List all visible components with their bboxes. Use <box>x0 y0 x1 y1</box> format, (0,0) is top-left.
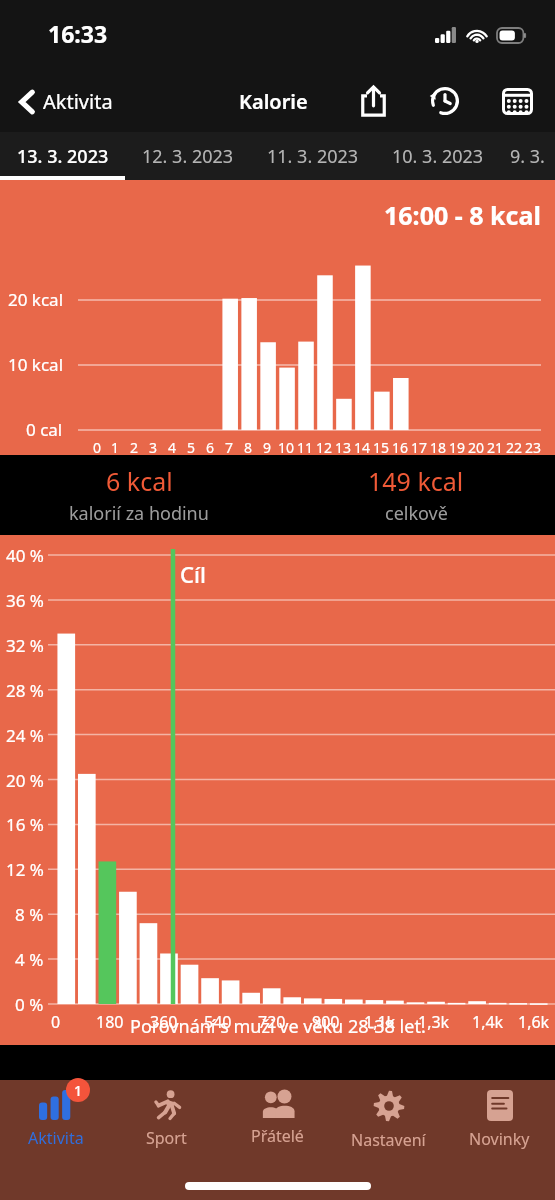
staticText: 0 <box>51 1011 61 1033</box>
staticText: 16 % <box>6 813 44 836</box>
staticText: Nastavení <box>351 1129 426 1151</box>
staticText: 6 kcal <box>106 464 173 498</box>
staticText: 720 <box>258 1011 286 1033</box>
staticText: 40 % <box>6 544 44 567</box>
staticText: celkově <box>385 501 448 526</box>
staticText: 0 <box>93 438 102 457</box>
staticText: 12. 3. 2023 <box>142 144 234 169</box>
staticText: 20 % <box>6 769 44 792</box>
staticText: 1,1k <box>364 1011 396 1033</box>
staticText: Aktivita <box>28 1127 84 1149</box>
staticText: 9. 3. <box>510 144 545 169</box>
staticText: 28 % <box>6 679 44 702</box>
button[interactable]: Share <box>351 79 395 123</box>
staticText: 12 <box>316 438 333 457</box>
staticText: 4 % <box>15 948 44 971</box>
staticText: 10 <box>278 438 295 457</box>
staticText: Sport <box>146 1127 187 1149</box>
staticText: 16 <box>392 438 409 457</box>
staticText: 3 <box>149 438 158 457</box>
staticText: 24 % <box>6 724 44 747</box>
button[interactable]: Nastavení <box>333 1080 444 1168</box>
staticText: 1 <box>74 1081 83 1100</box>
staticText: 1 <box>111 438 120 457</box>
staticText: 7 <box>225 438 234 457</box>
staticText: 18 <box>430 438 447 457</box>
button[interactable]: 1 <box>0 1080 111 1168</box>
staticText: 2 <box>130 438 139 457</box>
staticText: 17 <box>411 438 428 457</box>
staticText: 12 % <box>6 858 44 881</box>
button[interactable]: 10. 3. 2023 <box>375 132 500 180</box>
staticText: 13 <box>335 438 352 457</box>
staticText: 180 <box>96 1011 124 1033</box>
staticText: 10. 3. 2023 <box>392 144 484 169</box>
staticText: Kalorie <box>239 88 308 115</box>
staticText: 10 kcal <box>8 353 64 376</box>
staticText: 21 <box>487 438 504 457</box>
button[interactable]: 11. 3. 2023 <box>250 132 375 180</box>
button[interactable]: Sport <box>111 1080 222 1168</box>
staticText: 20 <box>468 438 485 457</box>
staticText: 19 <box>449 438 466 457</box>
button[interactable]: History <box>423 79 467 123</box>
staticText: 32 % <box>6 634 44 657</box>
staticText: Aktivita <box>43 88 113 115</box>
button[interactable]: 9. 3. <box>500 132 555 180</box>
staticText: 13. 3. 2023 <box>17 144 109 169</box>
staticText: 1,4k <box>472 1011 504 1033</box>
staticText: Přátelé <box>251 1125 304 1147</box>
staticText: 900 <box>312 1011 340 1033</box>
button[interactable]: Aktivita <box>14 82 119 121</box>
button[interactable]: Novinky <box>444 1080 555 1168</box>
staticText: 15 <box>373 438 390 457</box>
staticText: 360 <box>150 1011 178 1033</box>
staticText: 4 <box>168 438 177 457</box>
staticText: 36 % <box>6 589 44 612</box>
button[interactable]: Calendar <box>495 79 539 123</box>
staticText: 1,6k <box>518 1011 550 1033</box>
staticText: 1,3k <box>418 1011 450 1033</box>
staticText: 14 <box>354 438 371 457</box>
staticText: 6 <box>206 438 215 457</box>
staticText: 149 kcal <box>368 464 464 498</box>
staticText: Novinky <box>469 1128 530 1150</box>
staticText: Cíl <box>180 559 206 589</box>
staticText: 11. 3. 2023 <box>267 144 359 169</box>
staticText: 8 % <box>15 903 44 926</box>
staticText: kalorií za hodinu <box>69 501 209 526</box>
staticText: 0 % <box>15 993 44 1016</box>
staticText: 23 <box>525 438 542 457</box>
staticText: 8 <box>244 438 253 457</box>
staticText: 22 <box>506 438 523 457</box>
staticText: 16:00 - 8 kcal <box>384 198 541 232</box>
button[interactable]: 13. 3. 2023 <box>0 132 125 180</box>
staticText: 9 <box>263 438 272 457</box>
button[interactable]: Přátelé <box>222 1080 333 1168</box>
button[interactable]: 12. 3. 2023 <box>125 132 250 180</box>
staticText: 11 <box>297 438 314 457</box>
staticText: 0 cal <box>26 418 63 441</box>
staticText: 5 <box>187 438 196 457</box>
staticText: 540 <box>204 1011 232 1033</box>
staticText: 20 kcal <box>8 288 64 311</box>
staticText: 16:33 <box>48 18 108 49</box>
staticText: Porovnání s muži ve věku 28-38 let. <box>130 1014 426 1039</box>
